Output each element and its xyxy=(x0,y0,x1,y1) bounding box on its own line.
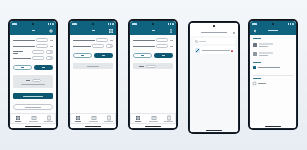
button[interactable] xyxy=(46,50,53,54)
button[interactable] xyxy=(36,44,48,48)
button[interactable]: Tab 0 xyxy=(10,113,26,124)
button[interactable] xyxy=(156,38,168,42)
button[interactable] xyxy=(94,53,113,58)
button[interactable] xyxy=(193,38,235,44)
button[interactable] xyxy=(46,56,53,60)
button[interactable]: Tab 0 xyxy=(70,113,86,124)
button[interactable] xyxy=(32,50,44,54)
button[interactable] xyxy=(13,65,32,70)
button[interactable] xyxy=(32,56,44,60)
button[interactable] xyxy=(34,65,53,70)
button[interactable] xyxy=(253,80,293,86)
button[interactable] xyxy=(36,38,48,42)
button[interactable]: Back xyxy=(252,28,257,33)
button[interactable]: Delete xyxy=(193,46,235,54)
button[interactable]: Menu xyxy=(48,28,54,34)
button[interactable] xyxy=(156,44,168,48)
button[interactable]: Tab 2 xyxy=(161,113,176,124)
button[interactable]: Menu xyxy=(168,28,174,34)
button[interactable] xyxy=(253,49,293,58)
button[interactable] xyxy=(96,38,108,42)
button[interactable] xyxy=(13,104,53,110)
button[interactable] xyxy=(253,40,293,49)
button[interactable] xyxy=(13,93,53,99)
button[interactable] xyxy=(106,44,113,48)
button[interactable]: Menu xyxy=(108,28,114,34)
button[interactable]: Tab 2 xyxy=(101,113,116,124)
button[interactable]: Delete xyxy=(230,49,233,52)
button[interactable]: Close xyxy=(231,30,236,35)
button[interactable] xyxy=(92,44,104,48)
button[interactable] xyxy=(253,64,293,71)
button[interactable]: Tab 2 xyxy=(41,113,56,124)
button[interactable]: Tab 1 xyxy=(26,113,41,124)
button[interactable]: Tab 0 xyxy=(130,113,146,124)
button[interactable] xyxy=(133,53,152,58)
button[interactable]: Tab 1 xyxy=(86,113,101,124)
button[interactable]: Tab 1 xyxy=(146,113,161,124)
button[interactable] xyxy=(154,53,173,58)
button[interactable] xyxy=(73,53,92,58)
